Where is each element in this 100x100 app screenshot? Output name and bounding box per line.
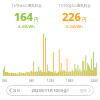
button[interactable]: 前日: [6, 85, 94, 96]
button[interactable]: 前日: [9, 88, 20, 93]
staticText: 164: [14, 9, 33, 24]
staticText: 226: [62, 9, 81, 24]
button[interactable]: 11/9(木)の電気料金: [2, 3, 50, 29]
staticText: 6.20kWh: [66, 24, 83, 29]
staticText: 18時: [60, 78, 79, 83]
staticText: 11/9(木)の電気料金: [11, 3, 42, 8]
staticText: 11/10(金)の電気料金: [58, 3, 91, 8]
staticText: 6時: [22, 78, 41, 83]
staticText: 24時: [79, 78, 98, 83]
button[interactable]: 11/10(金)の電気料金: [50, 3, 98, 29]
staticText: 前日: [13, 89, 20, 93]
staticText: 12時: [41, 78, 60, 83]
staticText: 円: [82, 17, 87, 23]
staticText: 4.40kWh: [18, 24, 35, 29]
staticText: 0時: [2, 78, 22, 83]
staticText: 翌日: [80, 89, 87, 93]
button[interactable]: 翌日: [80, 88, 91, 93]
staticText: 円: [34, 17, 39, 23]
staticText: 2023年11月10日(金): [20, 88, 80, 93]
